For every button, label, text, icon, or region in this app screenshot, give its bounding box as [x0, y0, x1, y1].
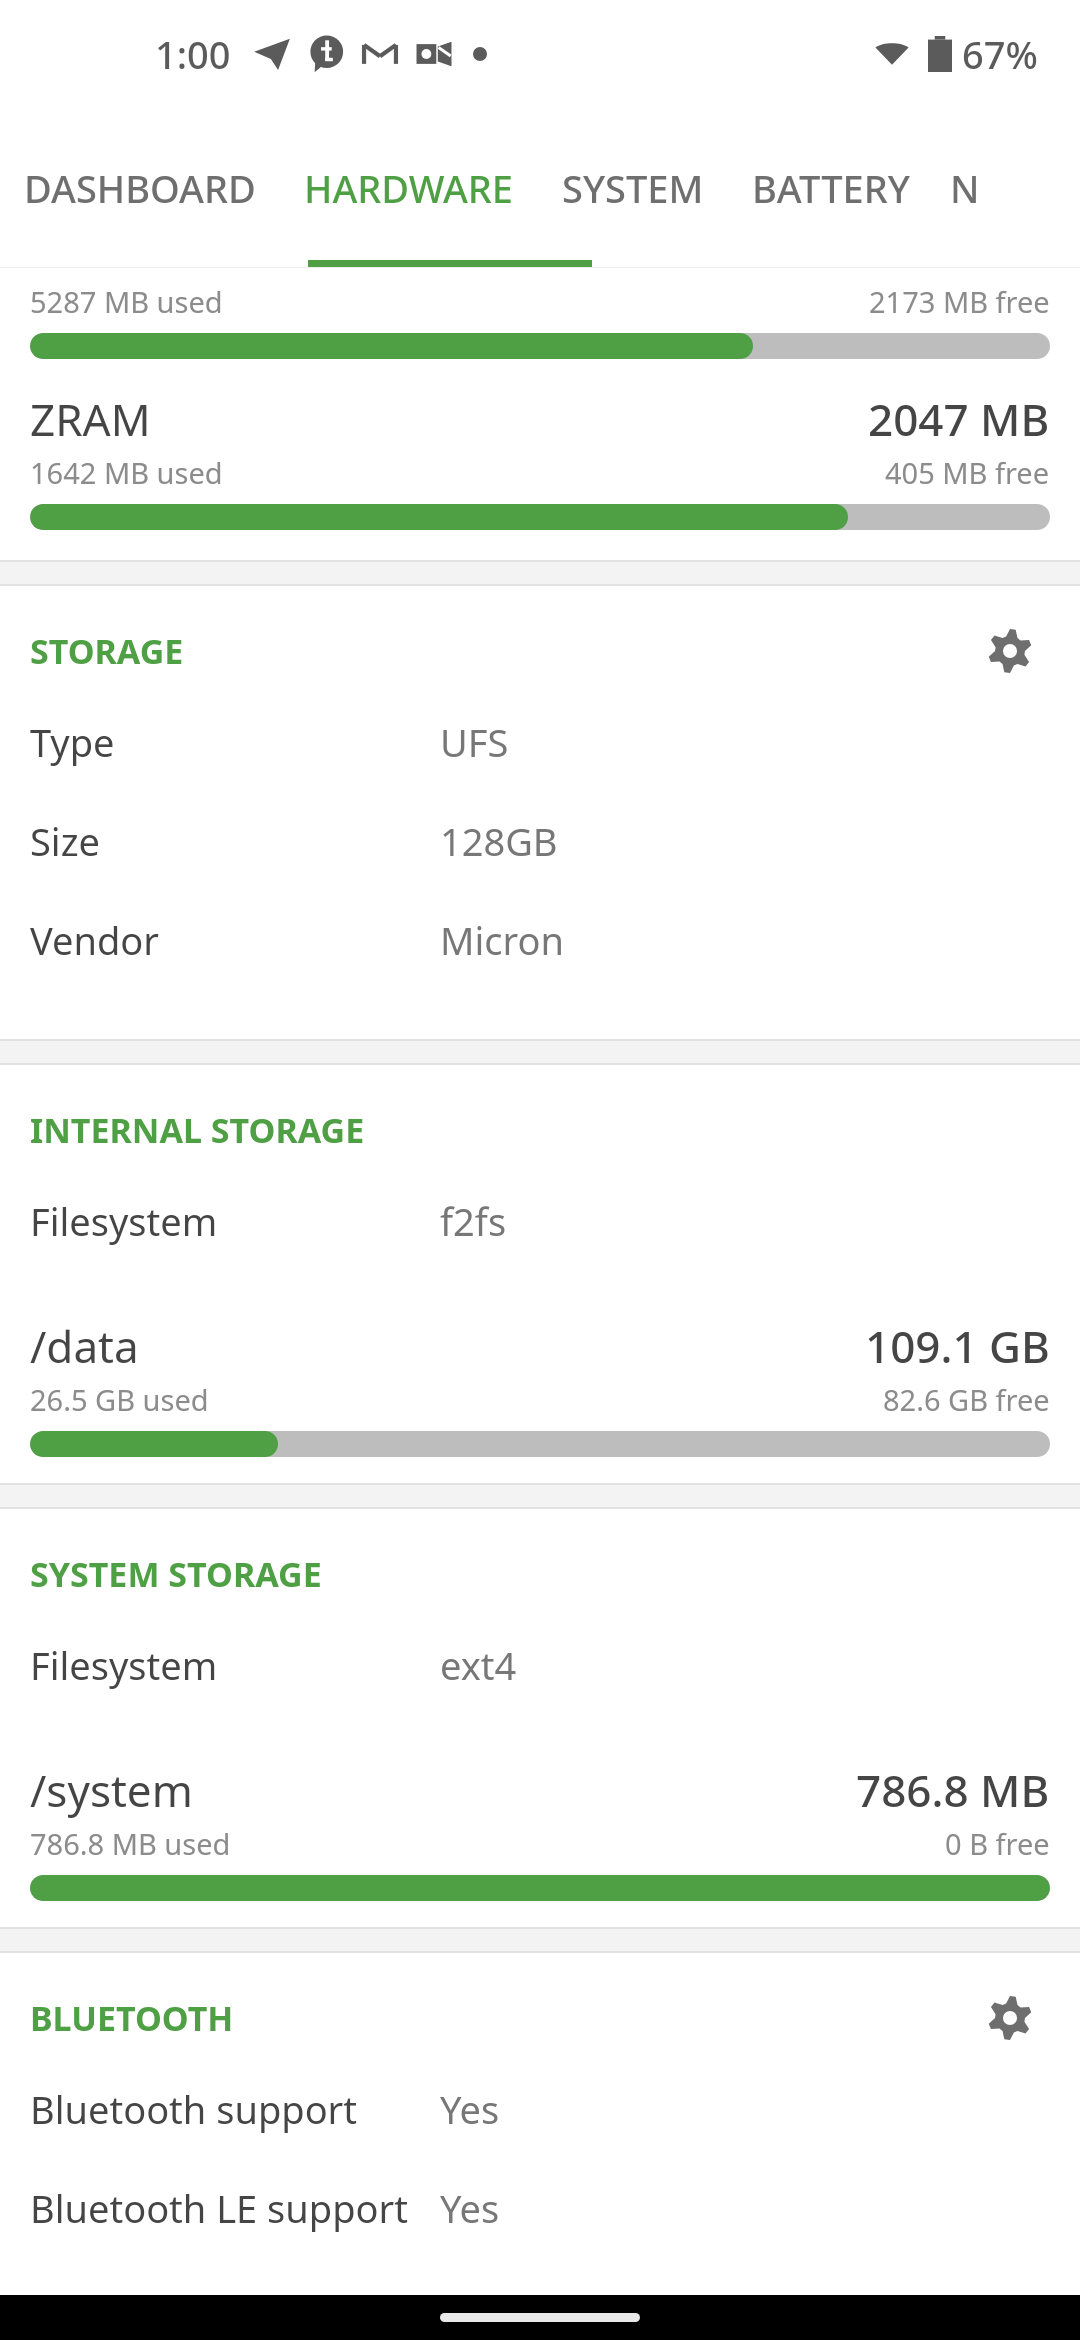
staticText: Yes — [440, 2083, 500, 2135]
staticText: INTERNAL STORAGE — [30, 1107, 365, 1153]
staticText: UFS — [440, 716, 509, 768]
button[interactable]: Size — [0, 815, 1080, 914]
button[interactable]: Storage settings — [970, 611, 1050, 691]
staticText: Filesystem — [30, 1639, 218, 1691]
staticText: Micron — [440, 914, 564, 966]
staticText: HARDWARE — [304, 162, 514, 214]
button[interactable]: BATTERY — [728, 108, 934, 268]
button[interactable]: N — [934, 108, 996, 268]
staticText: 5287 MB used — [30, 282, 223, 321]
staticText: ext4 — [440, 1639, 517, 1691]
button[interactable]: DASHBOARD — [0, 108, 280, 268]
staticText: Filesystem — [30, 1195, 218, 1247]
staticText: 67% — [962, 28, 1038, 80]
button[interactable]: Bluetooth settings — [970, 1978, 1050, 2058]
button[interactable]: Home — [440, 2313, 640, 2322]
staticText: 82.6 GB free — [883, 1380, 1050, 1419]
staticText: SYSTEM STORAGE — [30, 1551, 322, 1597]
staticText: 0 B free — [945, 1824, 1050, 1863]
button[interactable]: /system — [0, 1760, 1080, 1820]
staticText: 2173 MB free — [869, 282, 1050, 321]
button[interactable]: HARDWARE — [280, 108, 538, 268]
staticText: ZRAM — [30, 389, 151, 449]
staticText: N — [950, 162, 980, 214]
staticText: Yes — [440, 2182, 500, 2234]
staticText: Vendor — [30, 914, 160, 966]
button[interactable]: Bluetooth support — [0, 2083, 1080, 2182]
button[interactable]: SYSTEM — [538, 108, 728, 268]
button[interactable]: /data — [0, 1316, 1080, 1376]
staticText: BLUETOOTH — [30, 1995, 234, 2041]
staticText: DASHBOARD — [24, 162, 256, 214]
staticText: 1:00 — [155, 28, 231, 80]
staticText: Bluetooth support — [30, 2083, 358, 2135]
button[interactable]: Bluetooth LE support — [0, 2182, 1080, 2295]
staticText: STORAGE — [30, 628, 184, 674]
staticText: 2047 MB — [868, 389, 1050, 449]
staticText: Type — [30, 716, 115, 768]
staticText: /system — [30, 1760, 193, 1820]
staticText: BATTERY — [752, 162, 910, 214]
button[interactable]: Filesystem — [0, 1195, 1080, 1294]
button[interactable]: Filesystem — [0, 1639, 1080, 1738]
button[interactable]: Vendor — [0, 914, 1080, 1013]
staticText: 786.8 MB used — [30, 1824, 231, 1863]
staticText: 405 MB free — [885, 453, 1050, 492]
staticText: /data — [30, 1316, 139, 1376]
staticText: Size — [30, 815, 100, 867]
staticText: 26.5 GB used — [30, 1380, 209, 1419]
staticText: 128GB — [440, 815, 558, 867]
staticText: 786.8 MB — [856, 1760, 1050, 1820]
staticText: 109.1 GB — [865, 1316, 1050, 1376]
staticText: SYSTEM — [562, 162, 704, 214]
staticText: Bluetooth LE support — [30, 2182, 408, 2234]
staticText: f2fs — [440, 1195, 507, 1247]
button[interactable]: ZRAM — [0, 389, 1080, 449]
staticText: 1642 MB used — [30, 453, 223, 492]
button[interactable]: Type — [0, 716, 1080, 815]
